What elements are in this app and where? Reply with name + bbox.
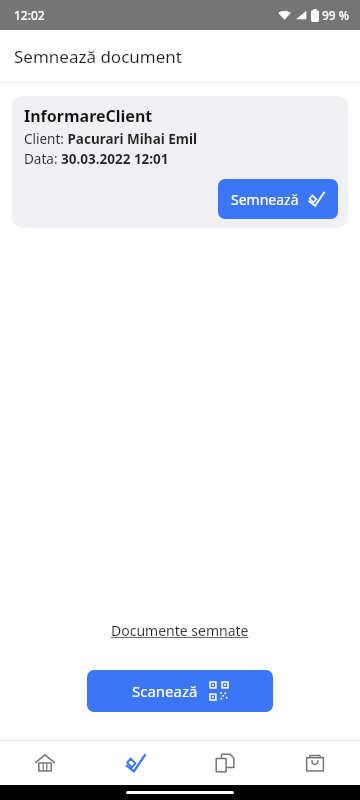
staticText: InformareClient	[24, 105, 153, 127]
staticText: Scanează	[132, 681, 198, 701]
button[interactable]: Documente semnate	[103, 617, 257, 644]
button[interactable]: Semnează	[218, 179, 338, 219]
staticText: Documente semnate	[111, 621, 249, 640]
staticText: Data: 30.03.2022 12:01	[24, 150, 169, 168]
staticText: Semnează	[231, 190, 299, 209]
button[interactable]: Home	[0, 741, 90, 785]
button[interactable]: InformareClient	[12, 96, 348, 228]
button[interactable]: Scanează	[87, 670, 273, 712]
staticText: 99 %	[322, 7, 350, 23]
button[interactable]: Documents	[180, 741, 270, 785]
staticText: Client: Pacurari Mihai Emil	[24, 130, 198, 148]
staticText: Semnează document	[14, 45, 182, 68]
button[interactable]: Store	[270, 741, 360, 785]
button[interactable]: Sign	[90, 741, 180, 785]
staticText: 12:02	[14, 7, 45, 23]
